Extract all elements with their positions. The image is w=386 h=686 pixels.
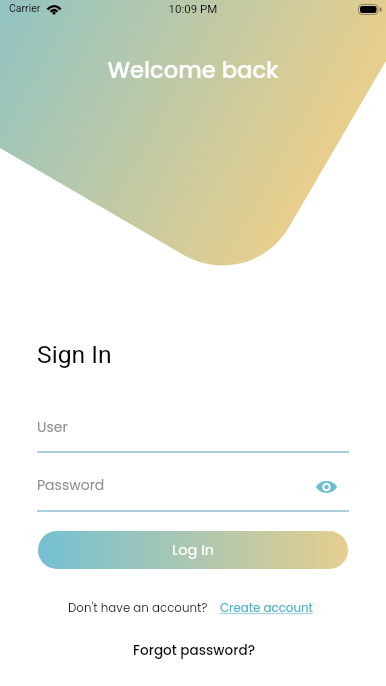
staticText: User bbox=[37, 417, 68, 437]
button[interactable]: Forgot password? bbox=[133, 641, 255, 660]
staticText: Welcome back bbox=[0, 54, 386, 86]
staticText: Log In bbox=[172, 540, 215, 560]
staticText: Don't have an account? bbox=[68, 600, 208, 617]
staticText: Carrier bbox=[9, 2, 41, 14]
button[interactable]: Log In bbox=[38, 531, 348, 569]
button[interactable]: Create account bbox=[220, 600, 313, 617]
staticText: Sign In bbox=[37, 340, 112, 369]
staticText: 10:09 PM bbox=[0, 2, 386, 15]
button[interactable]: Show password bbox=[312, 473, 340, 501]
staticText: Password bbox=[37, 475, 105, 495]
